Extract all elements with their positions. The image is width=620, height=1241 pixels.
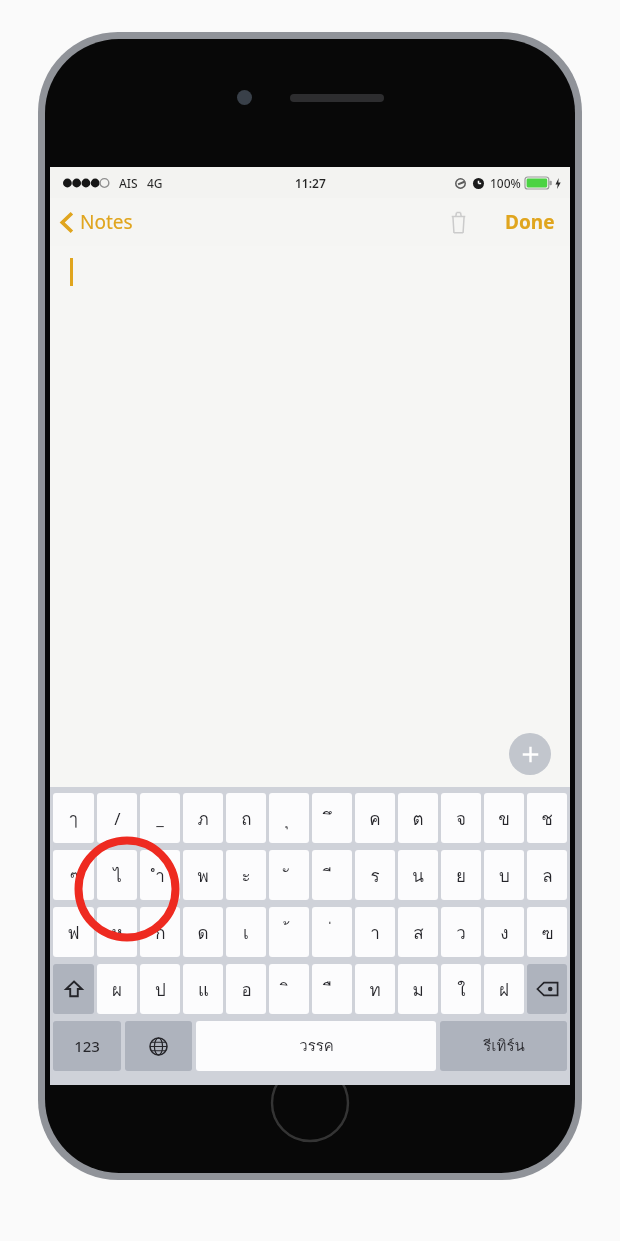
button[interactable]: า [355, 907, 395, 957]
staticText: ถ [241, 805, 252, 832]
staticText: ย [456, 862, 466, 889]
staticText: ก [155, 919, 166, 946]
staticText: ส [413, 919, 424, 946]
button[interactable]: ภ [183, 793, 223, 843]
button[interactable]: ำ [140, 850, 180, 900]
staticText: อ [241, 976, 252, 1003]
staticText: ๅ [69, 805, 78, 832]
button[interactable]: ึ [312, 793, 352, 843]
button[interactable]: ใ [441, 964, 481, 1014]
button[interactable]: ป [140, 964, 180, 1014]
staticText: ร [370, 862, 380, 889]
staticText: Done [505, 209, 555, 235]
staticText: ภ [197, 805, 209, 832]
button[interactable]: ผ [97, 964, 137, 1014]
button[interactable]: ไ [97, 850, 137, 900]
staticText: พ [197, 862, 209, 889]
button[interactable]: ร [355, 850, 395, 900]
button[interactable]: ว [441, 907, 481, 957]
button[interactable]: ้ [269, 907, 309, 957]
button[interactable]: วรรค [196, 1021, 436, 1071]
staticText: ม [412, 976, 424, 1003]
staticText: ช [541, 805, 553, 832]
button[interactable]: อ [226, 964, 266, 1014]
button[interactable]: เ [226, 907, 266, 957]
staticText: 4G [147, 175, 163, 191]
staticText: Notes [80, 209, 133, 235]
staticText: บ [499, 862, 510, 889]
button[interactable]: น [398, 850, 438, 900]
staticText: AIS [119, 175, 138, 191]
button[interactable]: ั [269, 850, 309, 900]
staticText: ล [542, 862, 553, 889]
button[interactable]: ื [312, 964, 352, 1014]
button[interactable]: Notes [60, 205, 139, 239]
button[interactable]: Done [502, 204, 558, 240]
staticText: ฟ [67, 919, 80, 946]
button[interactable]: พ [183, 850, 223, 900]
button[interactable]: ต [398, 793, 438, 843]
button[interactable]: Home [270, 1063, 350, 1143]
button[interactable]: Change keyboard [125, 1021, 192, 1071]
staticText: 11:27 [295, 175, 326, 191]
button[interactable]: บ [484, 850, 524, 900]
staticText: ผ [112, 976, 122, 1003]
staticText: า [370, 919, 380, 946]
button[interactable]: ะ [226, 850, 266, 900]
button[interactable]: ่ [312, 907, 352, 957]
staticText: 123 [74, 1036, 100, 1056]
button[interactable]: ก [140, 907, 180, 957]
button[interactable]: ม [398, 964, 438, 1014]
button[interactable]: Shift [53, 964, 94, 1014]
button[interactable]: ๆ [53, 850, 94, 900]
staticText: ห [111, 919, 123, 946]
button[interactable]: ท [355, 964, 395, 1014]
button[interactable]: ฝ [484, 964, 524, 1014]
button[interactable]: ง [484, 907, 524, 957]
staticText: ค [369, 805, 381, 832]
staticText: ง [500, 919, 509, 946]
staticText: วรรค [299, 1034, 334, 1058]
staticText: / [114, 807, 121, 830]
button[interactable]: Delete note [442, 206, 474, 238]
staticText: ฃ [541, 919, 554, 946]
button[interactable]: แ [183, 964, 223, 1014]
staticText: ด [197, 919, 209, 946]
button[interactable]: 123 [53, 1021, 121, 1071]
button[interactable]: จ [441, 793, 481, 843]
button[interactable]: ย [441, 850, 481, 900]
button[interactable]: ๅ [53, 793, 94, 843]
button[interactable]: ิ [269, 964, 309, 1014]
staticText: รีเทิร์น [483, 1034, 525, 1058]
button[interactable]: รีเทิร์น [440, 1021, 567, 1071]
button[interactable]: Add [509, 733, 551, 775]
button[interactable]: Backspace [527, 964, 567, 1014]
button[interactable]: ี [312, 850, 352, 900]
staticText: ๆ [69, 862, 79, 889]
staticText: ไ [113, 862, 122, 889]
button[interactable]: ถ [226, 793, 266, 843]
button[interactable]: ุ [269, 793, 309, 843]
button[interactable]: ส [398, 907, 438, 957]
button[interactable]: ห [97, 907, 137, 957]
staticText: ท [369, 976, 381, 1003]
button[interactable]: ช [527, 793, 567, 843]
staticText: ำ [155, 862, 165, 889]
staticText: น [412, 862, 424, 889]
staticText: ใ [457, 976, 466, 1003]
staticText: 100% [490, 175, 521, 191]
staticText: _ [156, 807, 164, 830]
button[interactable]: _ [140, 793, 180, 843]
button[interactable]: ล [527, 850, 567, 900]
button[interactable]: ด [183, 907, 223, 957]
button[interactable]: ค [355, 793, 395, 843]
staticText: จ [456, 805, 466, 832]
staticText: ข [498, 805, 510, 832]
button[interactable]: ฟ [53, 907, 94, 957]
button[interactable]: / [97, 793, 137, 843]
button[interactable]: ข [484, 793, 524, 843]
button[interactable]: ฃ [527, 907, 567, 957]
staticText: ว [456, 919, 466, 946]
staticText: เ [243, 919, 249, 946]
staticText: ะ [241, 862, 251, 889]
